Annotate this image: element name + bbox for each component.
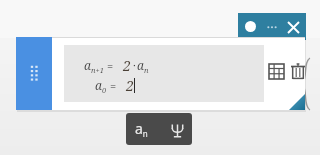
button[interactable]: an xyxy=(129,116,153,142)
staticText: a0 xyxy=(95,77,107,95)
staticText: · xyxy=(133,58,136,73)
button[interactable]: Record xyxy=(245,21,256,32)
staticText: = xyxy=(107,58,114,73)
staticText: 2 xyxy=(123,56,131,75)
staticText: 2 xyxy=(126,76,134,95)
button[interactable]: Resize xyxy=(289,94,305,110)
staticText: an+1 xyxy=(84,57,104,75)
button[interactable]: More options xyxy=(263,18,280,35)
button[interactable]: Math symbols xyxy=(165,116,189,142)
button[interactable]: Drag handle xyxy=(16,37,52,110)
staticText: = xyxy=(110,78,117,93)
button[interactable]: Insert table xyxy=(264,59,288,83)
staticText: an xyxy=(135,119,148,139)
button[interactable]: Close xyxy=(284,18,302,36)
button[interactable]: Delete xyxy=(286,59,310,83)
button[interactable]: an+1 xyxy=(64,45,264,102)
staticText: an xyxy=(137,57,149,75)
